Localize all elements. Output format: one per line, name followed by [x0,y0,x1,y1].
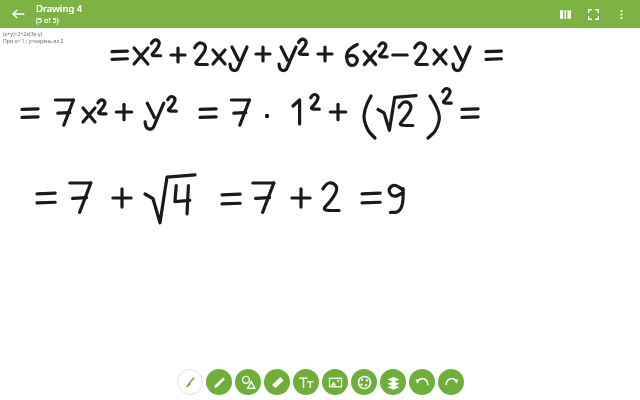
button[interactable]: Text [293,369,319,395]
button[interactable]: Pages [554,3,576,25]
button[interactable]: More options [610,3,632,25]
button[interactable]: Back [6,2,30,26]
button[interactable]: Color palette [351,369,377,395]
button[interactable]: Layers [380,369,406,395]
button[interactable]: Redo [438,369,464,395]
button[interactable]: Undo [409,369,435,395]
staticText: (5 of 5) [36,16,59,26]
button[interactable]: Fullscreen [582,3,604,25]
button[interactable]: Shapes [235,369,261,395]
staticText: (x+y)^2+2x(3x-y) [3,30,43,37]
button[interactable]: Pen [206,369,232,395]
staticText: Drawing 4 [36,2,83,15]
button[interactable]: Image [322,369,348,395]
button[interactable]: Eraser [264,369,290,395]
button[interactable]: Brush [177,369,203,395]
staticText: При x= 1 ; y=корень из 2 [3,37,64,44]
